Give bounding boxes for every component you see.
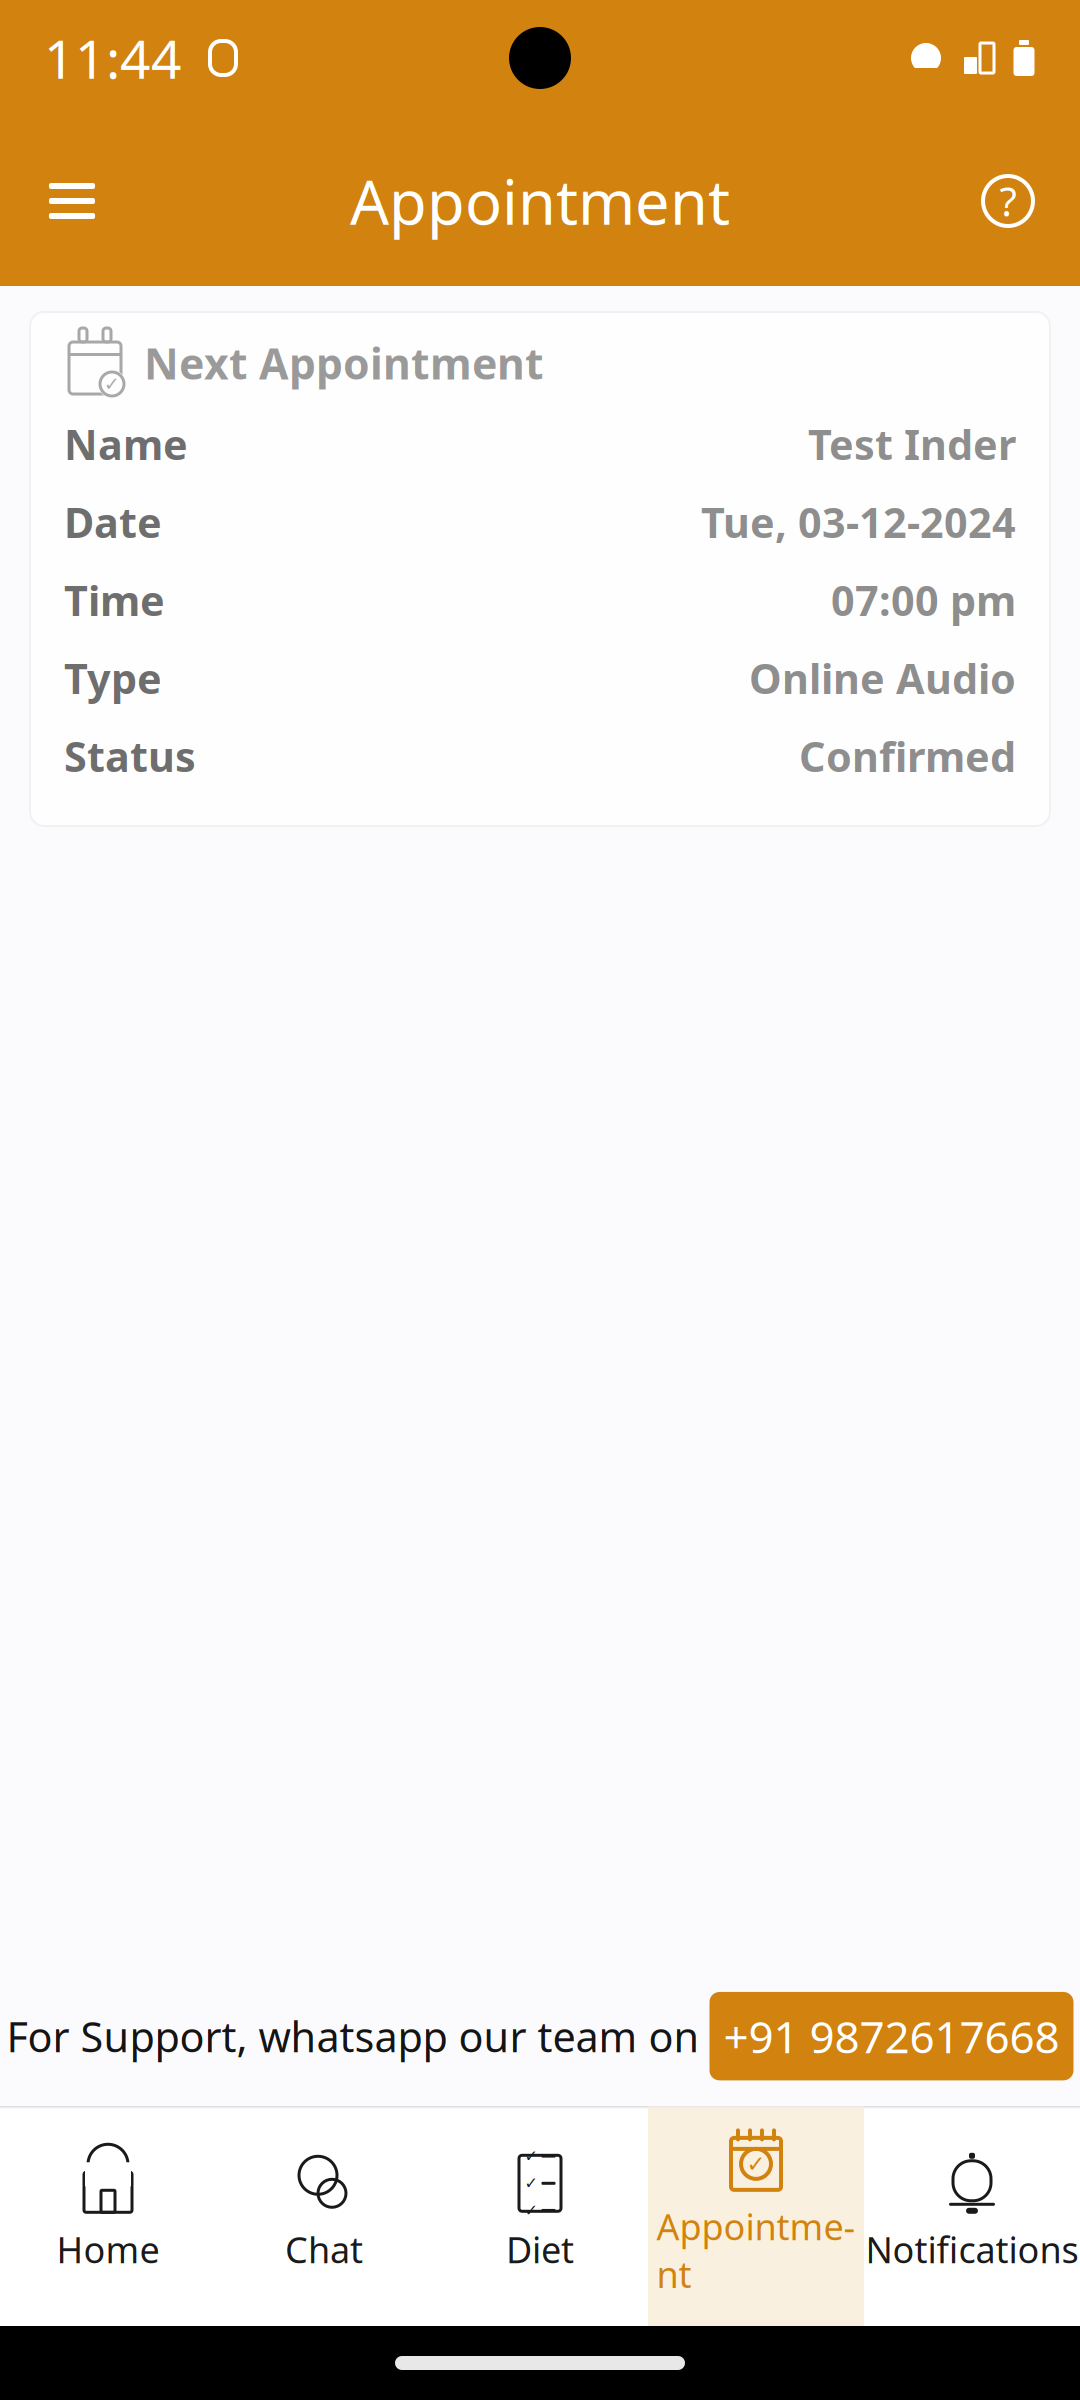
- staticText: Name: [64, 417, 188, 471]
- staticText: Notifications: [865, 2225, 1078, 2273]
- staticText: ✓: [524, 2174, 537, 2192]
- staticText: Diet: [506, 2225, 574, 2273]
- button[interactable]: Help: [958, 151, 1058, 251]
- staticText: Appointment: [350, 160, 730, 242]
- staticText: ?: [999, 174, 1016, 227]
- staticText: Tue, 03-12-2024: [701, 495, 1016, 549]
- staticText: ✓: [746, 2151, 765, 2177]
- staticText: Confirmed: [799, 729, 1016, 783]
- button[interactable]: Home: [0, 2131, 216, 2301]
- staticText: Online Audio: [749, 651, 1016, 705]
- staticText: Home: [56, 2225, 159, 2273]
- button[interactable]: ✓: [432, 2131, 648, 2301]
- staticText: ✓: [104, 373, 120, 395]
- staticText: +91 9872617668: [723, 2007, 1059, 2065]
- button[interactable]: Chat: [216, 2131, 432, 2301]
- button[interactable]: Menu: [22, 151, 122, 251]
- staticText: Date: [64, 495, 162, 549]
- staticText: Test Inder: [808, 417, 1016, 471]
- staticText: Time: [64, 573, 165, 627]
- button[interactable]: Notifications: [864, 2131, 1080, 2301]
- staticText: Status: [64, 729, 196, 783]
- staticText: Next Appointment: [144, 335, 544, 391]
- staticText: For Support, whatsapp our team on: [6, 2009, 699, 2064]
- staticText: Chat: [285, 2225, 363, 2273]
- staticText: 07:00 pm: [831, 573, 1016, 627]
- staticText: 11:44: [44, 23, 182, 93]
- staticText: ✓: [524, 2147, 537, 2165]
- button[interactable]: ✓: [648, 2106, 864, 2326]
- button[interactable]: +91 9872617668: [709, 1992, 1073, 2080]
- staticText: Type: [64, 651, 162, 705]
- staticText: ✓: [524, 2201, 537, 2220]
- staticText: Appointment: [656, 2202, 855, 2298]
